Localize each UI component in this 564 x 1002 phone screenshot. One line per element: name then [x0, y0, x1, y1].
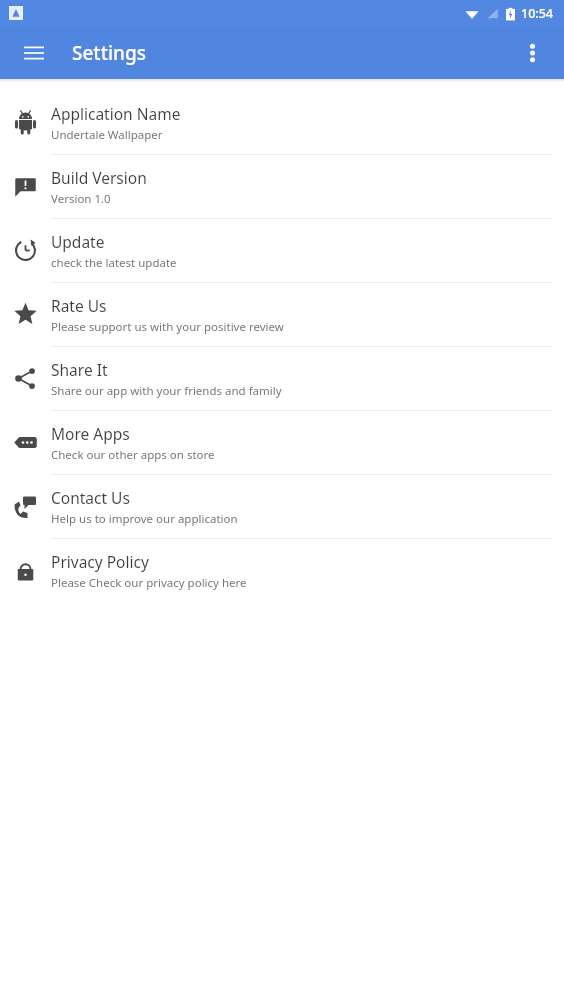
- button[interactable]: More options: [510, 31, 554, 75]
- button[interactable]: Build Version: [0, 155, 564, 218]
- staticText: Rate Us: [51, 295, 107, 316]
- staticText: Undertale Wallpaper: [51, 127, 163, 143]
- staticText: Contact Us: [51, 487, 130, 508]
- staticText: Version 1.0: [51, 191, 111, 207]
- button[interactable]: Privacy Policy: [0, 539, 564, 602]
- staticText: Build Version: [51, 167, 147, 188]
- staticText: Update: [51, 231, 105, 252]
- button[interactable]: Open navigation drawer: [12, 31, 56, 75]
- button[interactable]: Application Name: [0, 91, 564, 154]
- staticText: Check our other apps on store: [51, 447, 215, 463]
- button[interactable]: Share It: [0, 347, 564, 410]
- button[interactable]: Contact Us: [0, 475, 564, 538]
- button[interactable]: Rate Us: [0, 283, 564, 346]
- staticText: check the latest update: [51, 255, 177, 271]
- staticText: Application Name: [51, 103, 181, 124]
- staticText: Help us to improve our application: [51, 511, 238, 527]
- staticText: Settings: [72, 40, 146, 66]
- staticText: Share It: [51, 359, 108, 380]
- button[interactable]: More Apps: [0, 411, 564, 474]
- staticText: Privacy Policy: [51, 551, 149, 572]
- staticText: 10:54: [521, 5, 554, 22]
- button[interactable]: Update: [0, 219, 564, 282]
- staticText: Please Check our privacy policy here: [51, 575, 247, 591]
- staticText: More Apps: [51, 423, 130, 444]
- staticText: Share our app with your friends and fami…: [51, 383, 282, 399]
- staticText: Please support us with your positive rev…: [51, 319, 284, 335]
